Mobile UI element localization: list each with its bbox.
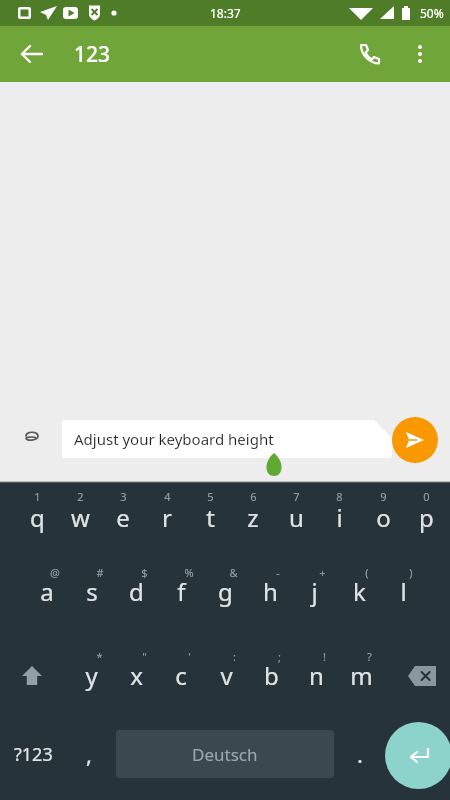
button[interactable]: o: [361, 500, 405, 534]
button[interactable]: 5: [188, 486, 232, 507]
button[interactable]: j: [292, 574, 336, 608]
button[interactable]: p: [404, 500, 448, 534]
button[interactable]: *: [77, 646, 121, 667]
button[interactable]: 0: [404, 486, 448, 507]
button[interactable]: q: [15, 500, 59, 534]
staticText: ': [188, 649, 191, 664]
button[interactable]: g: [203, 574, 247, 608]
staticText: l: [400, 575, 407, 608]
button[interactable]: ): [389, 562, 433, 583]
button[interactable]: ?: [347, 646, 391, 667]
staticText: y: [85, 659, 98, 692]
staticText: i: [336, 501, 343, 534]
button[interactable]: ": [122, 646, 166, 667]
button[interactable]: r: [145, 500, 189, 534]
button[interactable]: #: [78, 562, 122, 583]
button[interactable]: 6: [231, 486, 275, 507]
staticText: w: [71, 501, 90, 534]
staticText: 123: [74, 40, 111, 69]
button[interactable]: !: [302, 646, 346, 667]
button[interactable]: (: [345, 562, 389, 583]
button[interactable]: Enter: [385, 722, 450, 789]
button[interactable]: e: [101, 500, 145, 534]
button[interactable]: a: [25, 574, 69, 608]
staticText: r: [162, 501, 172, 534]
staticText: h: [263, 575, 278, 608]
staticText: u: [289, 501, 304, 534]
staticText: 6: [250, 489, 257, 504]
staticText: j: [311, 575, 318, 608]
button[interactable]: Back: [8, 30, 56, 78]
staticText: 1: [34, 489, 41, 504]
button[interactable]: h: [248, 574, 292, 608]
button[interactable]: i: [317, 500, 361, 534]
button[interactable]: d: [114, 574, 158, 608]
button[interactable]: +: [300, 562, 344, 583]
button[interactable]: Deutsch: [116, 730, 334, 778]
button[interactable]: ?123: [4, 730, 62, 778]
button[interactable]: 9: [361, 486, 405, 507]
staticText: o: [376, 501, 391, 534]
staticText: n: [309, 659, 324, 692]
staticText: *: [96, 649, 103, 664]
staticText: -: [276, 565, 280, 580]
button[interactable]: k: [337, 574, 381, 608]
staticText: 2: [77, 489, 84, 504]
button[interactable]: w: [58, 500, 102, 534]
button[interactable]: .: [338, 730, 382, 778]
staticText: k: [353, 575, 366, 608]
button[interactable]: &: [211, 562, 255, 583]
staticText: q: [30, 501, 45, 534]
button[interactable]: ;: [257, 646, 301, 667]
button[interactable]: 2: [58, 486, 102, 507]
button[interactable]: l: [381, 574, 425, 608]
button[interactable]: Attach: [8, 414, 56, 462]
staticText: v: [220, 659, 233, 692]
button[interactable]: m: [339, 658, 383, 692]
staticText: 0: [423, 489, 430, 504]
button[interactable]: :: [212, 646, 256, 667]
staticText: &: [229, 565, 238, 580]
button[interactable]: 4: [145, 486, 189, 507]
staticText: ?: [367, 649, 372, 664]
button[interactable]: t: [188, 500, 232, 534]
button[interactable]: 7: [274, 486, 318, 507]
staticText: 18:37: [210, 5, 241, 21]
button[interactable]: u: [274, 500, 318, 534]
button[interactable]: Backspace: [396, 650, 448, 702]
button[interactable]: s: [70, 574, 114, 608]
button[interactable]: ,: [66, 730, 112, 778]
button[interactable]: Shift: [6, 650, 58, 702]
button[interactable]: n: [294, 658, 338, 692]
button[interactable]: -: [256, 562, 300, 583]
button[interactable]: y: [69, 658, 113, 692]
button[interactable]: f: [159, 574, 203, 608]
button[interactable]: Call: [346, 30, 394, 78]
staticText: 50%: [420, 5, 444, 21]
staticText: 3: [120, 489, 127, 504]
button[interactable]: 1: [15, 486, 59, 507]
staticText: 9: [380, 489, 387, 504]
staticText: a: [40, 575, 54, 608]
staticText: b: [264, 659, 279, 692]
button[interactable]: More options: [396, 30, 444, 78]
button[interactable]: z: [231, 500, 275, 534]
button[interactable]: x: [114, 658, 158, 692]
button[interactable]: c: [159, 658, 203, 692]
button[interactable]: ': [167, 646, 211, 667]
staticText: f: [177, 575, 186, 608]
button[interactable]: b: [249, 658, 293, 692]
staticText: ;: [278, 649, 281, 664]
staticText: x: [130, 659, 143, 692]
button[interactable]: v: [204, 658, 248, 692]
button[interactable]: 3: [101, 486, 145, 507]
button[interactable]: %: [167, 562, 211, 583]
button[interactable]: Adjust your keyboard height: [62, 420, 392, 458]
staticText: !: [323, 649, 326, 664]
button[interactable]: Send: [392, 417, 438, 463]
staticText: ": [142, 649, 147, 664]
button[interactable]: 8: [317, 486, 361, 507]
button[interactable]: $: [122, 562, 166, 583]
staticText: :: [233, 649, 236, 664]
button[interactable]: @: [33, 562, 77, 583]
